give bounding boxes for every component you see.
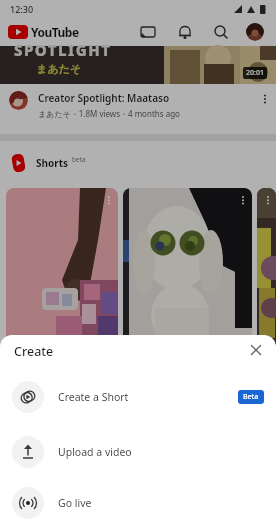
button[interactable]: Upload a video (0, 424, 276, 479)
button[interactable] (177, 24, 193, 40)
staticText: まあたそ・1.8M views・4 months ago (38, 108, 180, 119)
button[interactable] (105, 196, 113, 204)
staticText: Create (14, 343, 54, 360)
button[interactable]: Creator Spotlight: Maataso (0, 84, 276, 134)
staticText: まあたそ (36, 62, 82, 76)
staticText: 12:30 (10, 3, 34, 15)
button[interactable]: SPOTLIGHT (0, 46, 276, 84)
staticText: Shorts (36, 156, 69, 170)
staticText: Beta (243, 392, 259, 402)
button[interactable] (140, 24, 156, 40)
button[interactable] (257, 188, 276, 388)
staticText: 20:01 (246, 68, 264, 78)
staticText: Go live (58, 496, 264, 510)
staticText: SPOTLIGHT (14, 40, 112, 60)
staticText: Upload a video (58, 445, 264, 459)
button[interactable] (250, 344, 262, 356)
button[interactable] (123, 188, 252, 388)
button[interactable] (6, 188, 118, 388)
button[interactable] (213, 24, 229, 40)
button[interactable]: Create a Short (0, 369, 276, 424)
button[interactable] (260, 94, 270, 104)
staticText: YouTube (31, 24, 79, 40)
button[interactable] (264, 196, 272, 204)
staticText: beta (72, 155, 86, 164)
button[interactable] (246, 23, 264, 41)
button[interactable]: YouTube (8, 24, 79, 40)
staticText: Creator Spotlight: Maataso (38, 91, 170, 105)
button[interactable]: Go live (0, 479, 276, 527)
staticText: Create a Short (58, 390, 238, 404)
button[interactable] (239, 196, 247, 204)
